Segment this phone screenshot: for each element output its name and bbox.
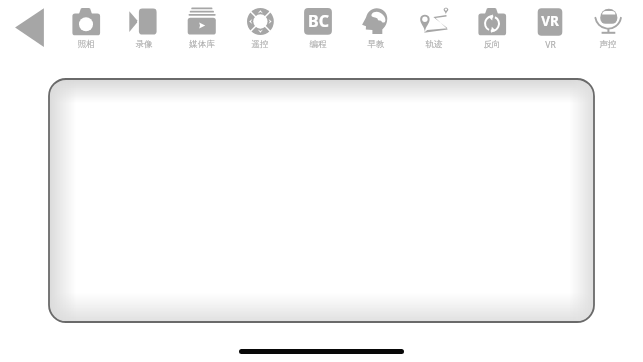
staticText: 声控 (599, 39, 617, 50)
button[interactable]: 媒体库 (173, 0, 231, 50)
staticText: 遥控 (251, 39, 269, 50)
staticText: 编程 (309, 39, 327, 50)
staticText: 录像 (135, 39, 153, 50)
button[interactable]: 轨迹 (405, 0, 463, 50)
staticText: 早教 (367, 39, 385, 50)
button[interactable]: 声控 (579, 0, 637, 50)
button[interactable]: VR (521, 0, 579, 50)
button[interactable]: 早教 (347, 0, 405, 50)
staticText: 轨迹 (425, 39, 443, 50)
staticText: 照相 (77, 39, 95, 50)
button[interactable]: Back (0, 0, 57, 50)
button[interactable]: 照相 (57, 0, 115, 50)
button[interactable]: 录像 (115, 0, 173, 50)
staticText: VR (541, 12, 559, 30)
button[interactable]: BC (289, 0, 347, 50)
staticText: 反向 (483, 39, 501, 50)
button[interactable]: 遥控 (231, 0, 289, 50)
staticText: VR (545, 39, 556, 50)
other: Home indicator (239, 349, 404, 354)
staticText: 媒体库 (189, 39, 215, 50)
staticText: BC (308, 10, 329, 32)
button[interactable]: 反向 (463, 0, 521, 50)
